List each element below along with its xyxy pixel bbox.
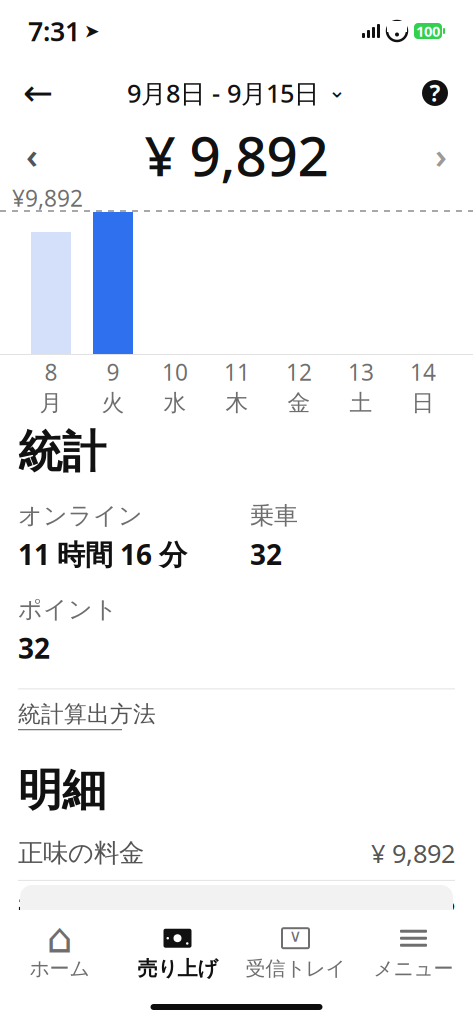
staticText: 11 [224,357,250,387]
staticText: 統計 [18,425,106,479]
staticText: 9 [106,357,119,387]
staticText: 土 [349,389,372,417]
staticText: 32 [250,535,282,573]
button[interactable]: メニュー [354,924,472,982]
staticText: メニュー [373,956,453,981]
staticText: 受信トレイ [245,956,345,981]
staticText: 統計算出方法 [18,700,156,728]
staticText: ¥ 9,892 [371,893,455,926]
staticText: 売り上げ [137,956,217,981]
staticText: ⌂ [46,915,72,962]
staticText: ← [23,73,53,113]
button[interactable]: 戻る [14,69,62,117]
staticText: 売り上げ総額 [18,894,170,925]
staticText: 13 [348,357,374,387]
button[interactable]: 売り上げ [118,924,236,982]
button[interactable]: ⌂ [0,924,118,982]
button[interactable]: ヘルプ [411,69,459,117]
button[interactable]: 9月8日 - 9月15日 [127,69,346,117]
staticText: ホーム [29,956,89,981]
button[interactable]: 統計算出方法 [18,689,156,741]
staticText: ‹ [26,132,38,178]
staticText: ➤ [84,20,100,42]
staticText: 正味の料金 [18,837,144,869]
staticText: › [435,132,447,178]
staticText: 木 [225,389,248,417]
staticText: 100 [416,21,440,41]
staticText: ⌄ [328,78,346,102]
button[interactable]: 前の週 [10,129,54,181]
button[interactable]: 次の週 [419,129,463,181]
staticText: 7:31 [28,13,80,49]
staticText: 32 [18,629,50,666]
staticText: ∨ [289,926,302,946]
staticText: 金 [287,389,310,417]
staticText: 11 時間 16 分 [18,535,187,573]
staticText: 12 [286,357,312,387]
staticText: 9月8日 - 9月15日 [127,76,319,110]
staticText: 月 [39,389,62,417]
staticText: 日 [411,389,434,417]
staticText: ¥9,892 [12,183,83,213]
staticText: 明細 [18,763,106,817]
staticText: オンライン [18,501,143,530]
staticText: ポイント [18,595,118,624]
staticText: 14 [410,357,436,387]
staticText: 8 [44,357,57,387]
staticText: ¥ 9,892 [144,119,328,191]
staticText: 10 [162,357,188,387]
staticText: 水 [163,389,186,417]
button[interactable]: ∨ [236,924,354,982]
staticText: 火 [101,389,124,417]
staticText: ¥ 9,892 [371,836,455,870]
staticText: ? [429,78,440,108]
staticText: 乗車 [250,501,298,530]
